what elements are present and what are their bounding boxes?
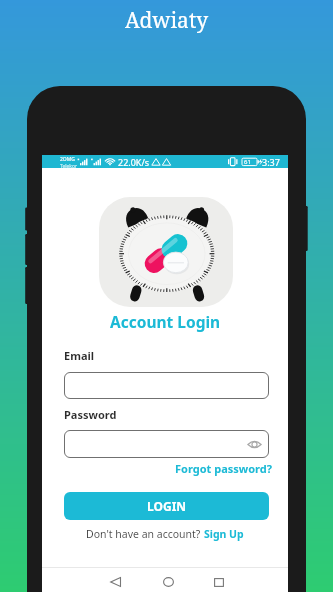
- button[interactable]: Recents: [205, 568, 233, 592]
- button[interactable]: Show password: [247, 437, 262, 452]
- staticText: Password: [64, 407, 117, 422]
- button[interactable]: Show password: [64, 430, 269, 458]
- staticText: 2OMG: [60, 156, 75, 163]
- staticText: Email: [64, 348, 95, 363]
- staticText: LOGIN: [147, 498, 187, 514]
- staticText: Adwiaty: [125, 6, 209, 35]
- staticText: Telekor: [60, 163, 78, 169]
- staticText: Account Login: [110, 311, 221, 332]
- button[interactable]: Back: [101, 568, 129, 592]
- button[interactable]: Home: [154, 568, 182, 592]
- staticText: Don't have an account?: [86, 527, 204, 541]
- button[interactable]: [64, 372, 269, 399]
- staticText: 22.0K/s: [118, 156, 150, 168]
- button[interactable]: LOGIN: [64, 492, 269, 520]
- button[interactable]: Forgot password?: [175, 461, 272, 476]
- staticText: 61: [244, 158, 251, 166]
- button[interactable]: Sign Up: [204, 527, 244, 541]
- staticText: 3:37: [262, 156, 280, 168]
